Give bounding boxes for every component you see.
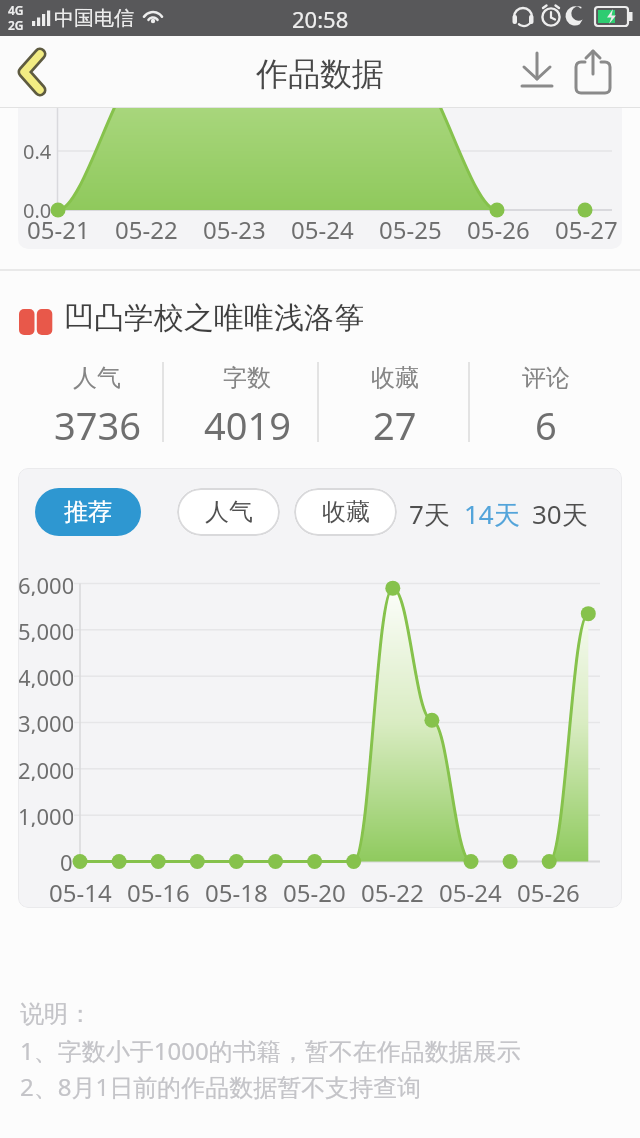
staticText: 27 — [373, 399, 417, 449]
staticText: 05-16 — [127, 876, 190, 904]
button[interactable] — [0, 36, 64, 108]
button[interactable] — [568, 44, 620, 102]
staticText: 05-18 — [205, 876, 268, 904]
staticText: 7天 — [409, 496, 450, 530]
staticText: 0.4 — [23, 138, 52, 164]
staticText: 收藏 — [322, 497, 370, 527]
staticText: 05-22 — [361, 876, 424, 904]
staticText: 05-24 — [439, 876, 502, 904]
staticText: 05-21 — [27, 213, 90, 243]
staticText: 人气 — [205, 497, 253, 527]
button[interactable]: 14天 — [457, 496, 527, 530]
staticText: 20:58 — [292, 4, 349, 32]
staticText: 05-27 — [555, 213, 618, 243]
staticText: 2G — [8, 17, 24, 32]
staticText: 字数 — [223, 363, 271, 393]
staticText: 6,000 — [18, 570, 73, 596]
staticText: 3,000 — [18, 708, 73, 734]
staticText: 30天 — [532, 496, 588, 530]
button[interactable]: 30天 — [525, 496, 595, 530]
staticText: 05-24 — [291, 213, 354, 243]
button[interactable]: 推荐 — [35, 488, 141, 536]
staticText: 2,000 — [18, 755, 73, 781]
staticText: 0.0 — [23, 197, 52, 223]
staticText: 1、字数小于1000的书籍，暂不在作品数据展示 — [20, 1034, 521, 1066]
staticText: 中国电信 — [54, 6, 134, 31]
staticText: 3736 — [54, 399, 141, 449]
staticText: 05-23 — [203, 213, 266, 243]
button[interactable]: 收藏 — [294, 488, 397, 536]
staticText: 05-26 — [467, 213, 530, 243]
staticText: 6 — [535, 399, 557, 449]
staticText: 推荐 — [64, 497, 112, 527]
staticText: 05-26 — [517, 876, 580, 904]
staticText: 05-14 — [49, 876, 112, 904]
staticText: 05-22 — [115, 213, 178, 243]
staticText: 评论 — [522, 363, 570, 393]
staticText: 收藏 — [371, 363, 419, 393]
staticText: 1,000 — [18, 801, 73, 827]
staticText: 0 — [60, 847, 73, 873]
button[interactable]: 凹凸学校之唯唯浅洛筝 — [0, 288, 640, 346]
button[interactable]: 7天 — [399, 496, 459, 530]
staticText: 14天 — [464, 496, 520, 530]
button[interactable] — [512, 48, 562, 98]
staticText: 2、8月1日前的作品数据暂不支持查询 — [20, 1070, 422, 1102]
staticText: 人气 — [73, 363, 121, 393]
staticText: 4019 — [204, 399, 291, 449]
staticText: 说明： — [20, 999, 92, 1029]
button[interactable]: 人气 — [177, 488, 280, 536]
staticText: 5,000 — [18, 616, 73, 642]
staticText: 凹凸学校之唯唯浅洛筝 — [64, 299, 364, 337]
staticText: 4,000 — [18, 662, 73, 688]
staticText: 作品数据 — [256, 54, 384, 94]
staticText: 05-20 — [283, 876, 346, 904]
staticText: 4G — [8, 2, 24, 17]
staticText: 05-25 — [379, 213, 442, 243]
